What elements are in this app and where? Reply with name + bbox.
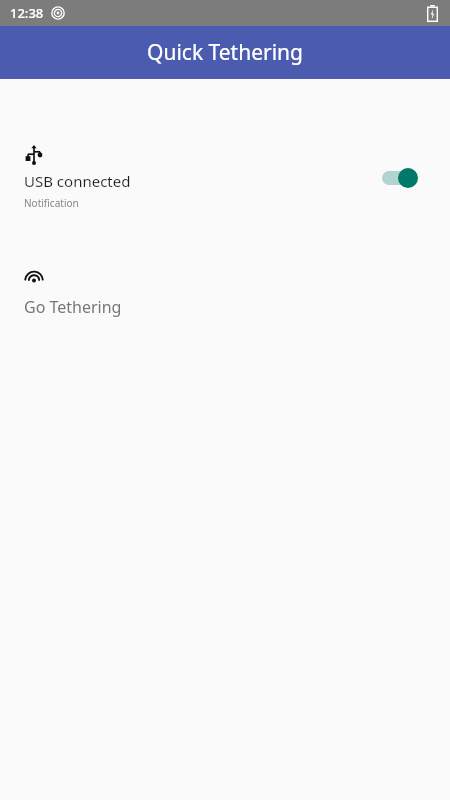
staticText: Quick Tethering <box>147 38 303 67</box>
staticText: Notification <box>24 196 79 210</box>
button[interactable]: Go Tethering <box>0 270 450 318</box>
button[interactable]: USB connected <box>0 145 450 210</box>
button[interactable]: USB connected notification toggle <box>380 164 428 192</box>
staticText: USB connected <box>24 171 131 191</box>
staticText: Go Tethering <box>24 296 122 318</box>
staticText: 12:38 <box>10 4 44 22</box>
